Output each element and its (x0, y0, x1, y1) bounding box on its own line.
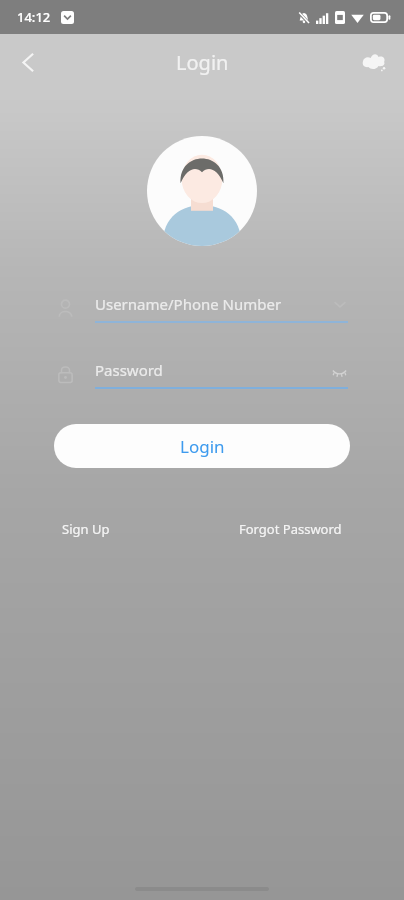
button[interactable]: Login (54, 424, 350, 468)
staticText: Password (95, 360, 330, 380)
button[interactable]: Show password (330, 361, 348, 379)
staticText: Username/Phone Number (95, 294, 332, 314)
button[interactable]: Username/Phone Number (56, 290, 348, 326)
button[interactable]: Back (4, 38, 52, 86)
button[interactable]: Forgot Password (235, 514, 346, 544)
staticText: Login (180, 435, 225, 458)
staticText: Forgot Password (239, 520, 342, 538)
button[interactable]: Select language (352, 40, 396, 84)
staticText: 14:12 (17, 8, 51, 26)
button[interactable]: Profile avatar (147, 136, 257, 246)
button[interactable]: Password (56, 356, 348, 392)
button[interactable]: Sign Up (58, 514, 114, 544)
staticText: Sign Up (62, 520, 110, 538)
staticText: Login (176, 49, 229, 76)
